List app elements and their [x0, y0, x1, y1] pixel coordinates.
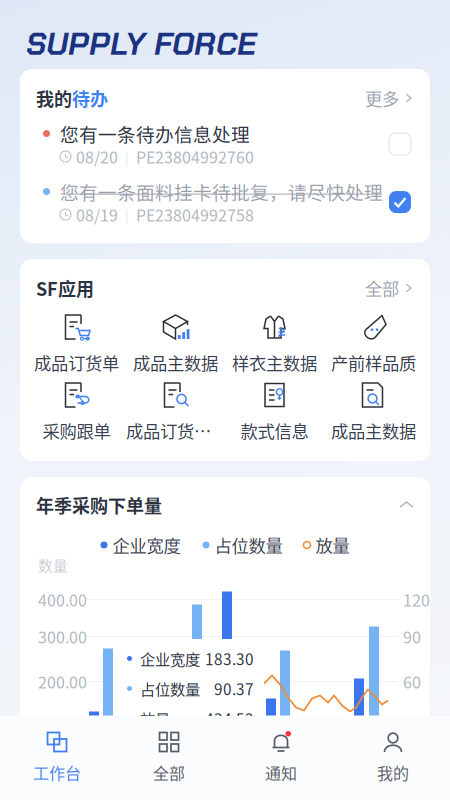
staticText: PE23804992760 — [136, 145, 254, 168]
staticText: 数量 — [38, 554, 68, 576]
button[interactable]: Completed — [389, 191, 411, 213]
button[interactable]: 全部 — [365, 275, 414, 301]
button[interactable]: 成品主数据 — [324, 377, 423, 445]
button[interactable]: 样衣主数据 — [225, 309, 324, 377]
staticText: 成品订货单 — [34, 350, 119, 375]
staticText: SF应用 — [36, 275, 94, 301]
staticText: 成品主数据 — [133, 350, 218, 375]
staticText: 08/19 — [76, 203, 118, 226]
button[interactable]: 成品订货订单 — [126, 377, 225, 445]
staticText: 采购跟单 — [42, 418, 110, 443]
button[interactable]: 款式信息 — [225, 377, 324, 445]
staticText: 占位数量 — [214, 532, 282, 558]
staticText: 成品订货订单 — [126, 418, 225, 443]
button[interactable]: 通知 — [225, 716, 337, 800]
staticText: 放量 — [315, 532, 349, 558]
staticText: 我的 — [36, 85, 72, 111]
staticText: 您有一条待办信息处理 — [60, 120, 250, 147]
staticText: 占位数量 — [140, 677, 200, 700]
button[interactable]: 成品订货单 — [27, 309, 126, 377]
staticText: 08/20 — [76, 145, 118, 168]
staticText: 成品主数据 — [331, 418, 416, 443]
staticText: 我的 — [377, 761, 409, 784]
staticText: 年季采购下单量 — [36, 492, 162, 518]
staticText: 产前样品质 — [331, 350, 416, 375]
staticText: 90 — [403, 625, 421, 648]
staticText: 全部 — [365, 275, 399, 301]
staticText: 通知 — [265, 761, 297, 784]
button[interactable]: 更多 — [365, 85, 414, 111]
staticText: 更多 — [365, 85, 399, 111]
staticText: PE23804992758 — [136, 203, 254, 226]
staticText: 您有一条面料挂卡待批复，请尽快处理 — [60, 178, 383, 205]
staticText: 300.00 — [38, 625, 87, 648]
staticText: 434.52 — [205, 707, 254, 730]
staticText: 企业宽度 — [112, 532, 180, 558]
staticText: 待办 — [72, 85, 108, 111]
staticText: 样衣主数据 — [232, 350, 317, 375]
staticText: | — [125, 147, 129, 166]
button[interactable]: Mark complete — [389, 133, 411, 155]
staticText: 400.00 — [38, 588, 87, 611]
staticText: 200.00 — [38, 670, 87, 693]
staticText: 60 — [403, 670, 421, 693]
staticText: 放量 — [140, 707, 170, 730]
staticText: | — [125, 205, 129, 224]
staticText: 120 — [403, 588, 430, 611]
button[interactable]: 成品主数据 — [126, 309, 225, 377]
staticText: SUPPLY FORCE — [26, 23, 256, 65]
staticText: 183.30 — [205, 647, 254, 670]
button[interactable]: 我的 — [337, 716, 449, 800]
button[interactable]: 产前样品质 — [324, 309, 423, 377]
staticText: 款式信息 — [240, 418, 308, 443]
staticText: 工作台 — [33, 761, 81, 784]
button[interactable]: 全部 — [113, 716, 225, 800]
button[interactable]: Collapse — [399, 497, 414, 512]
button[interactable]: 工作台 — [1, 716, 113, 800]
staticText: 全部 — [153, 761, 185, 784]
staticText: 90.37 — [214, 677, 254, 700]
button[interactable]: 采购跟单 — [27, 377, 126, 445]
staticText: 企业宽度 — [140, 647, 200, 670]
